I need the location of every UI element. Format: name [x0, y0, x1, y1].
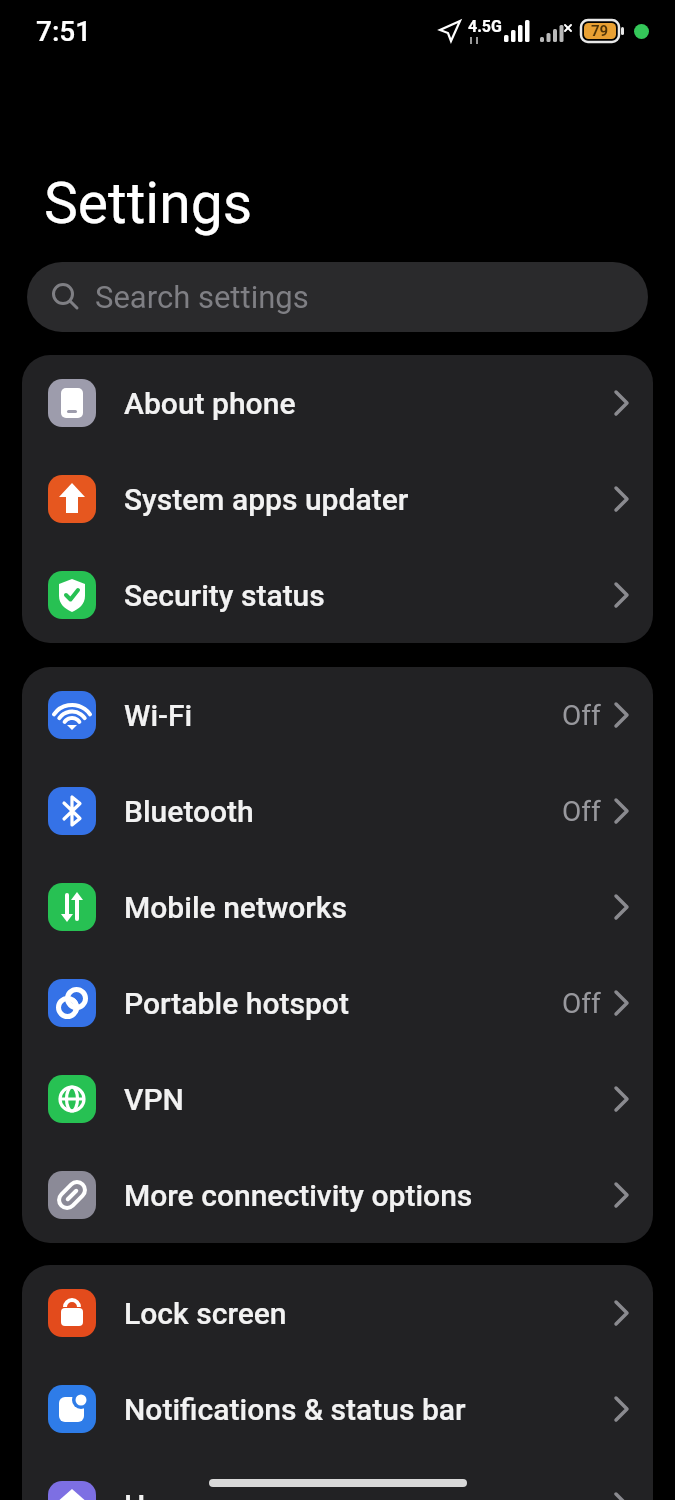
- button[interactable]: Portable hotspot: [22, 955, 653, 1051]
- staticText: Settings: [44, 170, 253, 237]
- staticText: Lock screen: [124, 1296, 615, 1331]
- button[interactable]: Bluetooth: [22, 763, 653, 859]
- button[interactable]: System apps updater: [22, 451, 653, 547]
- staticText: 4.5G: [468, 17, 502, 36]
- staticText: Wi-Fi: [124, 698, 562, 733]
- staticText: Off: [562, 699, 601, 732]
- staticText: System apps updater: [124, 482, 615, 517]
- staticText: More connectivity options: [124, 1178, 615, 1213]
- staticText: Portable hotspot: [124, 986, 562, 1021]
- button[interactable]: Notifications & status bar: [22, 1361, 653, 1457]
- button[interactable]: Mobile networks: [22, 859, 653, 955]
- staticText: 79: [591, 22, 609, 40]
- button[interactable]: About phone: [22, 355, 653, 451]
- staticText: Mobile networks: [124, 890, 615, 925]
- staticText: 7:51: [36, 15, 92, 48]
- staticText: VPN: [124, 1082, 615, 1117]
- button[interactable]: More connectivity options: [22, 1147, 653, 1243]
- button[interactable]: Home screen: [22, 1457, 653, 1500]
- staticText: Bluetooth: [124, 794, 562, 829]
- staticText: Off: [562, 795, 601, 828]
- button[interactable]: Wi-Fi: [22, 667, 653, 763]
- button[interactable]: Lock screen: [22, 1265, 653, 1361]
- button[interactable]: Security status: [22, 547, 653, 643]
- button[interactable]: VPN: [22, 1051, 653, 1147]
- button[interactable]: Search settings: [27, 262, 648, 332]
- staticText: Security status: [124, 578, 615, 613]
- staticText: Off: [562, 987, 601, 1020]
- staticText: Home screen: [124, 1488, 615, 1500]
- staticText: Search settings: [95, 279, 309, 315]
- staticText: Notifications & status bar: [124, 1392, 615, 1427]
- staticText: About phone: [124, 386, 615, 421]
